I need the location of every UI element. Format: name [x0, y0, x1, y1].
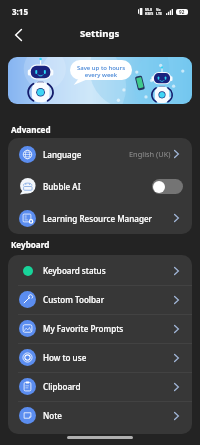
button[interactable]: Clipboard [8, 372, 192, 401]
staticText: Keyboard [11, 239, 50, 250]
staticText: Keyboard status [43, 265, 106, 276]
staticText: Vo LTE [156, 7, 163, 16]
staticText: Learning Resource Manager [43, 213, 153, 224]
staticText: My Favorite Prompts [43, 323, 124, 334]
staticText: Clipboard [43, 381, 81, 392]
staticText: 92 [179, 9, 185, 15]
button[interactable]: Save up to hours every week [8, 57, 192, 104]
staticText: Bubble AI [43, 181, 81, 192]
staticText: How to use [43, 352, 87, 363]
staticText: Note [43, 410, 62, 421]
button[interactable]: Learning Resource Manager [8, 202, 192, 234]
staticText: 55.0 KB/S [145, 7, 154, 16]
button[interactable]: Back [7, 24, 29, 46]
button[interactable]: Note [8, 401, 192, 430]
button[interactable]: How to use [8, 343, 192, 372]
button[interactable]: Language [8, 138, 192, 170]
staticText: Language [43, 149, 82, 160]
button[interactable]: Keyboard status [8, 256, 192, 285]
staticText: 3:15 [12, 6, 28, 17]
button[interactable]: My Favorite Prompts [8, 314, 192, 343]
staticText: Custom Toolbar [43, 294, 105, 305]
staticText: English (UK) [129, 149, 171, 159]
button[interactable]: Bubble AI [8, 170, 192, 202]
button[interactable]: Custom Toolbar [8, 285, 192, 314]
staticText: Settings [80, 27, 120, 40]
staticText: Save up to hours every week [70, 64, 132, 79]
staticText: Advanced [11, 124, 51, 135]
